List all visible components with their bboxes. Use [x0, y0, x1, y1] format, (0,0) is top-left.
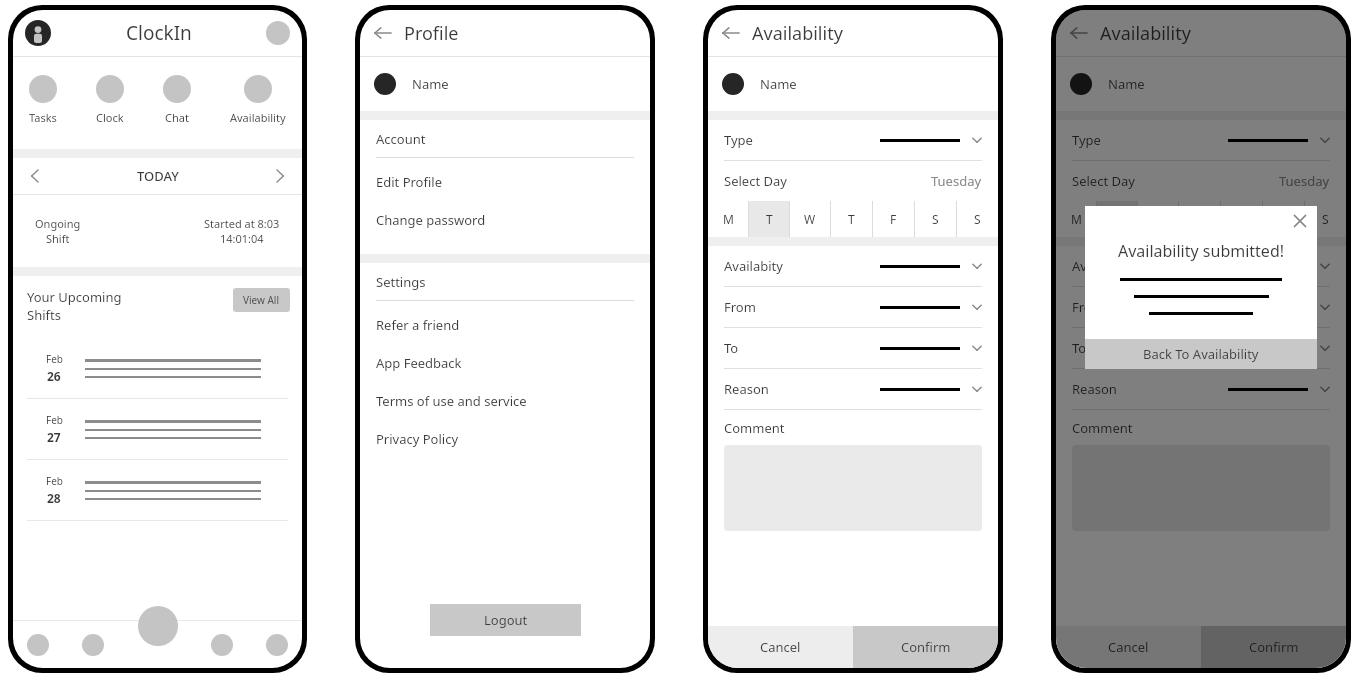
button[interactable]: Close — [1293, 214, 1307, 228]
staticText: Tuesday — [931, 172, 982, 190]
button[interactable]: Back — [1070, 24, 1088, 42]
button[interactable]: Name — [708, 57, 998, 111]
button[interactable]: Availabity — [1056, 246, 1346, 287]
staticText: 27 — [47, 429, 61, 445]
button[interactable]: M — [708, 201, 748, 237]
button[interactable]: Next day — [270, 166, 290, 186]
button[interactable]: Change password — [360, 208, 650, 232]
button[interactable]: Back — [722, 24, 740, 42]
button[interactable]: App Feedback — [360, 351, 650, 375]
button[interactable]: Reason — [1056, 369, 1346, 410]
button[interactable]: S — [1305, 201, 1346, 237]
staticText: TODAY — [137, 167, 179, 185]
button[interactable]: S — [915, 201, 956, 237]
staticText: Availability — [752, 21, 843, 46]
button[interactable]: Confirm — [853, 626, 998, 668]
button[interactable]: Feb — [13, 338, 302, 399]
button[interactable]: Select Day — [1056, 161, 1346, 201]
button[interactable]: Back To Availability — [1085, 339, 1317, 369]
button[interactable]: Feb — [13, 460, 302, 521]
button[interactable]: From — [708, 287, 998, 328]
staticText: Chat — [165, 110, 189, 125]
button[interactable]: S — [1263, 201, 1304, 237]
button[interactable]: Name — [360, 57, 650, 111]
button[interactable]: Previous day — [25, 166, 45, 186]
button[interactable]: Edit Profile — [360, 170, 650, 194]
button[interactable]: To — [708, 328, 998, 369]
staticText: Logout — [484, 611, 528, 629]
staticText: Feb — [46, 413, 63, 427]
button[interactable]: F — [1221, 201, 1262, 237]
button[interactable]: T — [1179, 201, 1220, 237]
button[interactable]: Terms of use and service — [360, 389, 650, 413]
button[interactable]: T — [831, 201, 872, 237]
staticText: Select Day — [1072, 172, 1135, 190]
button[interactable]: F — [873, 201, 914, 237]
button[interactable]: Confirm — [1201, 626, 1346, 668]
button[interactable]: From — [1056, 287, 1346, 328]
button[interactable]: Availabity — [708, 246, 998, 287]
button[interactable]: Logout — [430, 604, 581, 636]
button[interactable]: Profile — [25, 20, 51, 46]
staticText: Name — [760, 75, 797, 93]
button[interactable]: Feb — [13, 399, 302, 460]
button[interactable]: T — [1097, 201, 1137, 237]
staticText: Availabity — [724, 257, 783, 275]
staticText: Cancel — [1108, 638, 1149, 656]
staticText: Availability — [1100, 21, 1191, 46]
staticText: Type — [724, 131, 753, 149]
button[interactable]: Cancel — [708, 626, 853, 668]
staticText: From — [1072, 298, 1104, 316]
button[interactable]: Settings — [376, 273, 426, 291]
button[interactable]: Name — [1056, 57, 1346, 111]
button[interactable]: Select Day — [708, 161, 998, 201]
staticText: App Feedback — [376, 354, 462, 372]
staticText: M — [1071, 211, 1082, 227]
staticText: Confirm — [901, 638, 951, 656]
button[interactable]: Chat — [161, 75, 193, 125]
button[interactable]: Clock in — [138, 606, 178, 646]
button[interactable]: View All — [233, 288, 290, 312]
button[interactable]: Availability — [228, 75, 288, 125]
button[interactable]: W — [1138, 201, 1178, 237]
staticText: Availabity — [1072, 257, 1131, 275]
button[interactable]: T — [749, 201, 789, 237]
button[interactable]: Back — [374, 24, 392, 42]
button[interactable]: Account — [376, 130, 426, 148]
button[interactable]: Refer a friend — [360, 313, 650, 337]
button[interactable]: Tasks — [27, 75, 59, 125]
staticText: Type — [1072, 131, 1101, 149]
staticText: S — [974, 211, 981, 227]
button[interactable]: M — [1056, 201, 1096, 237]
staticText: M — [723, 211, 734, 227]
staticText: Shift — [46, 231, 70, 246]
staticText: F — [890, 211, 897, 227]
button[interactable]: S — [957, 201, 998, 237]
button[interactable]: Type — [1056, 120, 1346, 161]
button[interactable]: Type — [708, 120, 998, 161]
button[interactable]: Chat — [211, 634, 233, 656]
staticText: 14:01:04 — [220, 231, 264, 246]
staticText: Change password — [376, 211, 486, 229]
button[interactable]: Home — [27, 634, 49, 656]
button[interactable]: Clock — [94, 75, 126, 125]
button[interactable]: Tasks — [82, 634, 104, 656]
button[interactable]: Reason — [708, 369, 998, 410]
button[interactable]: Ongoing — [13, 195, 302, 267]
button[interactable]: To — [1056, 328, 1346, 369]
staticText: Confirm — [1249, 638, 1299, 656]
button[interactable]: Cancel — [1056, 626, 1201, 668]
button[interactable]: W — [790, 201, 830, 237]
staticText: 26 — [47, 368, 61, 384]
button[interactable]: Notifications — [266, 21, 290, 45]
button[interactable]: Profile — [266, 634, 288, 656]
button[interactable]: Privacy Policy — [360, 427, 650, 451]
staticText: Clock — [96, 110, 124, 125]
